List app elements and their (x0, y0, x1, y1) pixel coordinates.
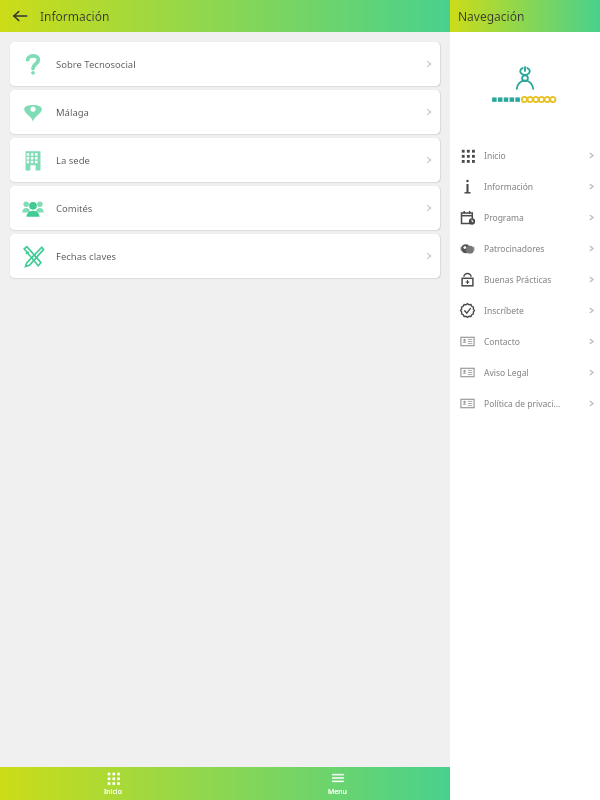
button[interactable]: Buenas Prácticas (450, 264, 600, 295)
button[interactable]: Menu (225, 767, 450, 800)
staticText: Política de privaci… (484, 398, 582, 410)
staticText: Navegación (458, 8, 525, 24)
staticText: Fechas claves (56, 250, 418, 263)
button[interactable]: Back (4, 0, 36, 32)
button[interactable]: Inicio (0, 767, 225, 800)
staticText: Aviso Legal (484, 367, 582, 379)
staticText: Inicio (104, 787, 122, 797)
button[interactable]: Inscríbete (450, 295, 600, 326)
staticText: La sede (56, 154, 418, 167)
button[interactable]: Programa (450, 202, 600, 233)
button[interactable]: La sede (10, 138, 440, 182)
button[interactable]: Política de privaci… (450, 388, 600, 419)
button[interactable]: Aviso Legal (450, 357, 600, 388)
button[interactable]: Información (450, 171, 600, 202)
staticText: Contacto (484, 336, 582, 348)
button[interactable]: Sobre Tecnosocial (10, 42, 440, 86)
button[interactable]: Málaga (10, 90, 440, 134)
staticText: Buenas Prácticas (484, 274, 582, 286)
staticText: Comités (56, 202, 418, 215)
staticText: Información (40, 8, 110, 24)
button[interactable]: Inicio (450, 140, 600, 171)
staticText: Sobre Tecnosocial (56, 58, 418, 71)
button[interactable]: Fechas claves (10, 234, 440, 278)
button[interactable]: Comités (10, 186, 440, 230)
staticText: Menu (328, 787, 347, 797)
staticText: Patrocinadores (484, 243, 582, 255)
button[interactable]: Contacto (450, 326, 600, 357)
staticText: Inscríbete (484, 305, 582, 317)
staticText: Málaga (56, 106, 418, 119)
staticText: Inicio (484, 150, 582, 162)
button[interactable]: Patrocinadores (450, 233, 600, 264)
staticText: Programa (484, 212, 582, 224)
staticText: Información (484, 181, 582, 193)
